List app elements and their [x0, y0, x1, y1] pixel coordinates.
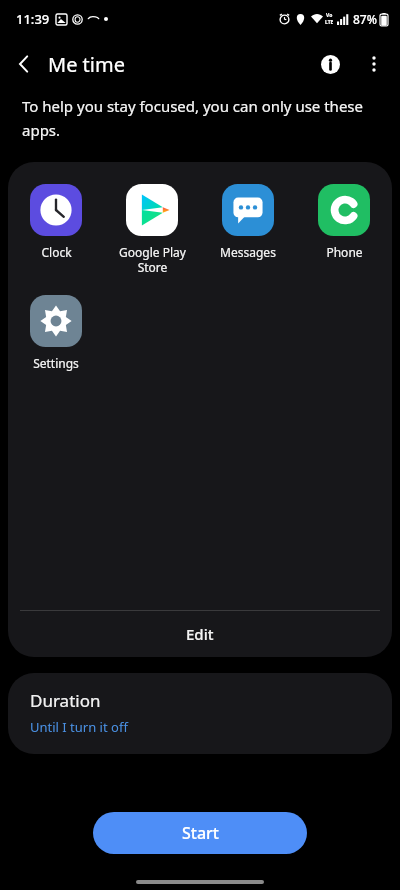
- staticText: Clock: [41, 244, 72, 260]
- staticText: Settings: [33, 355, 79, 371]
- staticText: Vo: [326, 12, 333, 19]
- staticText: Duration: [30, 689, 101, 712]
- staticText: 11:39: [16, 10, 50, 28]
- button[interactable]: Messages: [200, 180, 296, 264]
- button[interactable]: Back: [0, 40, 48, 88]
- button[interactable]: Duration: [8, 673, 392, 754]
- button[interactable]: Google Play Store: [104, 180, 200, 279]
- button[interactable]: Clock: [8, 180, 104, 264]
- staticText: Start: [182, 822, 219, 844]
- staticText: 87%: [353, 11, 377, 27]
- button[interactable]: Edit: [8, 611, 392, 657]
- staticText: To help you stay focused, you can only u…: [22, 96, 364, 140]
- staticText: Edit: [186, 624, 214, 644]
- button[interactable]: More options: [352, 42, 396, 86]
- staticText: Google Play Store: [119, 244, 186, 275]
- staticText: Phone: [326, 244, 363, 260]
- staticText: LTE: [325, 19, 334, 26]
- button[interactable]: Start: [93, 812, 307, 854]
- button[interactable]: Phone: [296, 180, 392, 264]
- staticText: Until I turn it off: [30, 718, 128, 736]
- button[interactable]: Information: [308, 42, 352, 86]
- staticText: Messages: [220, 244, 276, 260]
- staticText: Me time: [48, 51, 125, 78]
- button[interactable]: Settings: [8, 291, 104, 375]
